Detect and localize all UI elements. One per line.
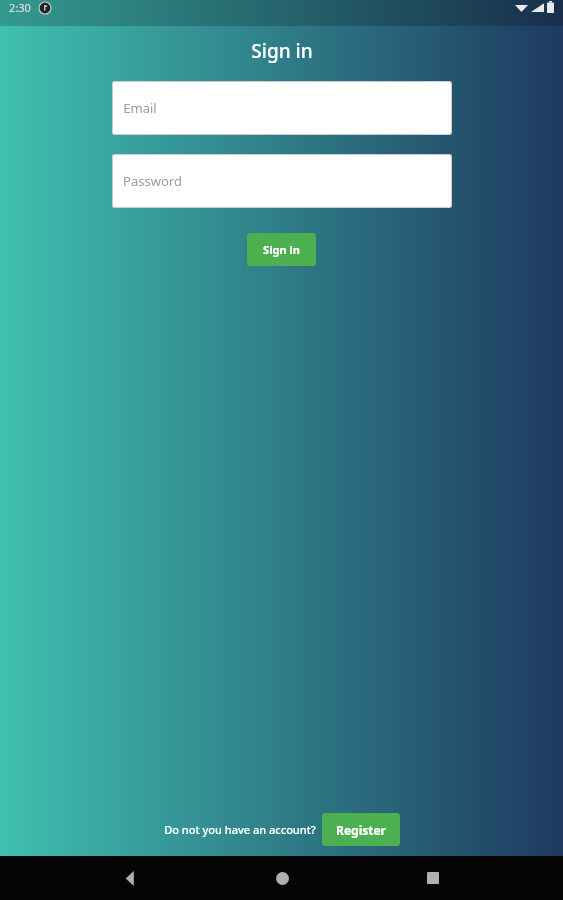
button[interactable]: Password xyxy=(112,154,452,208)
staticText: Email xyxy=(123,99,157,117)
staticText: 2:30 xyxy=(9,0,31,15)
button[interactable]: Recent apps xyxy=(411,856,455,900)
staticText: Do not you have an account? xyxy=(164,822,316,837)
staticText: Password xyxy=(123,172,182,190)
staticText: Sign in xyxy=(263,242,300,257)
button[interactable]: Sign in xyxy=(247,233,316,266)
button[interactable]: Email xyxy=(112,81,452,135)
button[interactable]: Back xyxy=(108,856,152,900)
staticText: Sign in xyxy=(251,38,313,64)
button[interactable]: Home xyxy=(260,856,304,900)
button[interactable]: Register xyxy=(322,813,400,846)
staticText: Register xyxy=(336,822,386,838)
